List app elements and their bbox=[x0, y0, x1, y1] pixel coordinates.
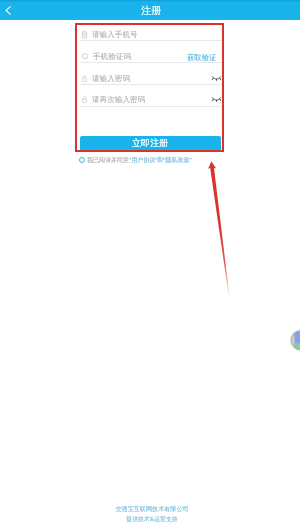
staticText: 立即注册 bbox=[132, 137, 169, 148]
staticText: 手机验证码 bbox=[93, 52, 131, 62]
staticText: 提供技术&运营支持 bbox=[126, 515, 178, 523]
staticText: “用户协议”和“隐私政策” bbox=[129, 156, 192, 164]
staticText: 我已阅读并同意 bbox=[87, 156, 129, 164]
button[interactable]: 请输入手机号 bbox=[77, 25, 222, 41]
staticText: 请输入密码 bbox=[92, 74, 130, 84]
button[interactable]: Show password bbox=[212, 74, 221, 81]
staticText: 请再次输入密码 bbox=[92, 95, 146, 105]
staticText: 注册 bbox=[141, 4, 161, 16]
staticText: 获取验证 bbox=[187, 53, 217, 62]
button[interactable]: 立即注册 bbox=[80, 136, 221, 151]
button[interactable]: 手机验证码 bbox=[77, 41, 222, 63]
button[interactable]: 获取验证 bbox=[187, 53, 217, 62]
button[interactable]: 请再次输入密码 bbox=[77, 85, 222, 107]
staticText: 请输入手机号 bbox=[92, 30, 138, 40]
other: Agree to terms bbox=[78, 156, 86, 164]
button[interactable]: Assistant bbox=[290, 329, 300, 351]
button[interactable]: Agree to terms bbox=[78, 153, 192, 167]
button[interactable]: 请输入密码 bbox=[77, 63, 222, 85]
staticText: 交通宝互联网技术有限公司 bbox=[115, 505, 189, 513]
button[interactable]: Show password bbox=[212, 95, 221, 102]
button[interactable]: Back bbox=[0, 0, 18, 20]
